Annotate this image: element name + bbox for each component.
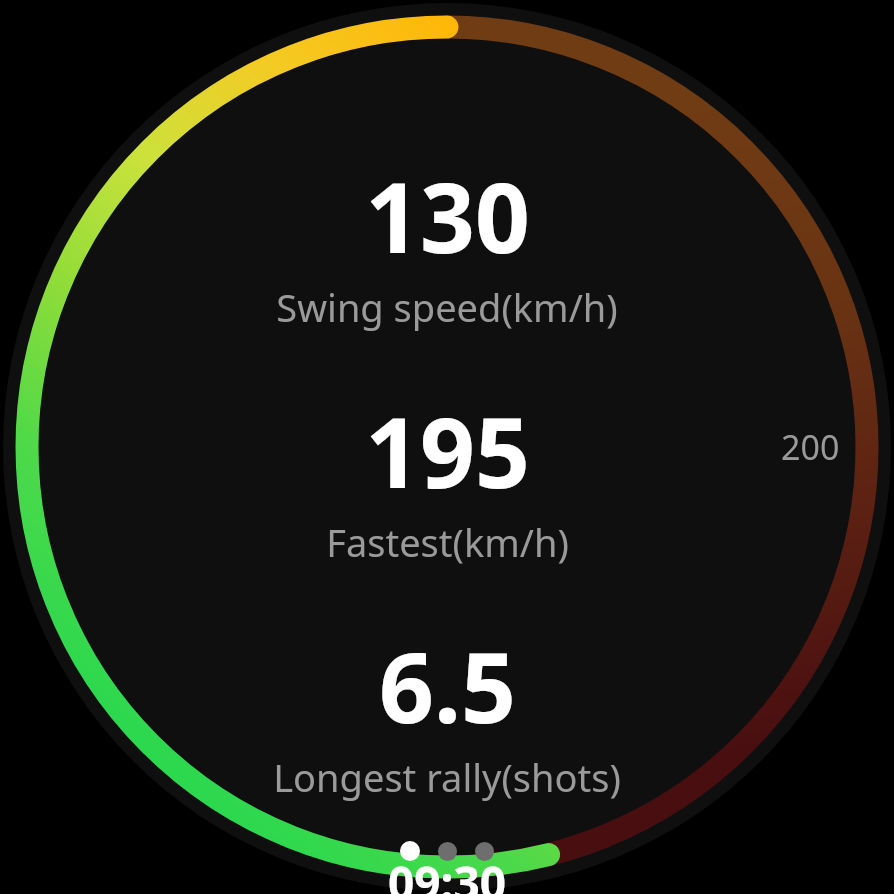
staticText: 6.5 (379, 620, 516, 751)
staticText: 09:30 (388, 851, 507, 894)
button[interactable]: Page 3 of 3 (475, 842, 494, 861)
staticText: 130 (365, 150, 530, 281)
button[interactable]: Page 1 of 3 (400, 841, 420, 861)
button[interactable]: Page 2 of 3 (438, 842, 457, 861)
staticText: 200 (781, 424, 840, 470)
staticText: Longest rally(shots) (273, 751, 621, 803)
staticText: 195 (365, 385, 530, 516)
staticText: Fastest(km/h) (326, 516, 569, 568)
staticText: Swing speed(km/h) (276, 281, 618, 333)
